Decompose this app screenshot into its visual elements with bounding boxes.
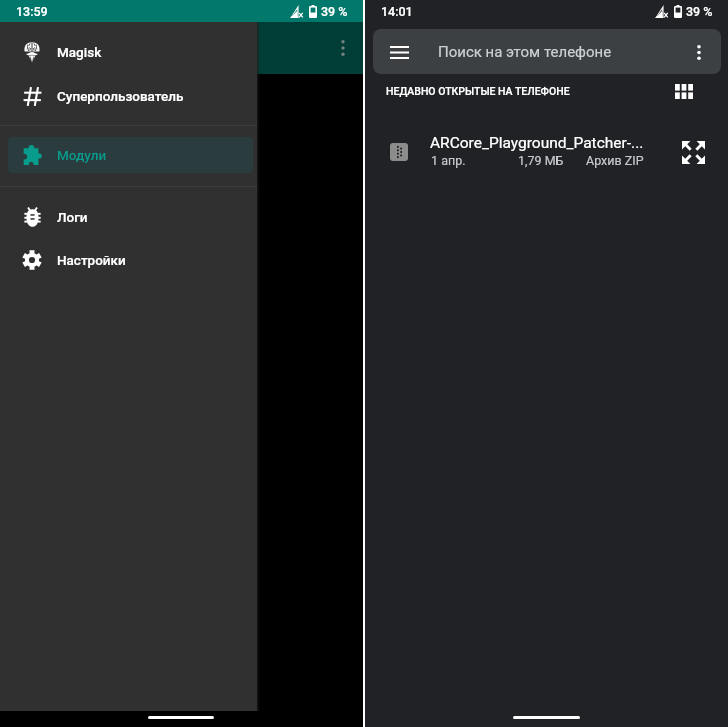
- button[interactable]: Magisk: [0, 30, 257, 74]
- button[interactable]: Настройки: [0, 238, 257, 282]
- button[interactable]: Логи: [0, 195, 257, 239]
- staticText: Суперпользователь: [57, 88, 184, 104]
- staticText: Модули: [57, 147, 107, 163]
- staticText: ARCore_Playground_Patcher-...: [430, 134, 644, 152]
- button[interactable]: More options: [686, 39, 712, 65]
- button[interactable]: Grid view: [669, 77, 698, 106]
- staticText: 1 апр.: [431, 153, 466, 168]
- staticText: 13:59: [16, 4, 48, 19]
- staticText: Настройки: [57, 252, 126, 268]
- button[interactable]: Модули: [8, 137, 253, 173]
- staticText: Magisk: [57, 44, 102, 60]
- staticText: 1,79 МБ: [518, 153, 564, 168]
- button[interactable]: ARCore_Playground_Patcher-...: [365, 129, 728, 175]
- staticText: Поиск на этом телефоне: [438, 43, 612, 61]
- staticText: НЕДАВНО ОТКРЫТЫЕ НА ТЕЛЕФОНЕ: [386, 85, 570, 97]
- staticText: 39 %: [321, 4, 348, 19]
- button[interactable]: More options: [330, 35, 356, 61]
- staticText: Архив ZIP: [586, 153, 644, 168]
- button[interactable]: Суперпользователь: [0, 74, 257, 118]
- staticText: 39 %: [686, 4, 713, 19]
- staticText: Логи: [57, 209, 88, 225]
- staticText: 14:01: [381, 4, 413, 19]
- button[interactable]: Expand: [677, 136, 710, 169]
- button[interactable]: Open navigation menu: [373, 29, 721, 74]
- button[interactable]: Open navigation menu: [386, 39, 412, 65]
